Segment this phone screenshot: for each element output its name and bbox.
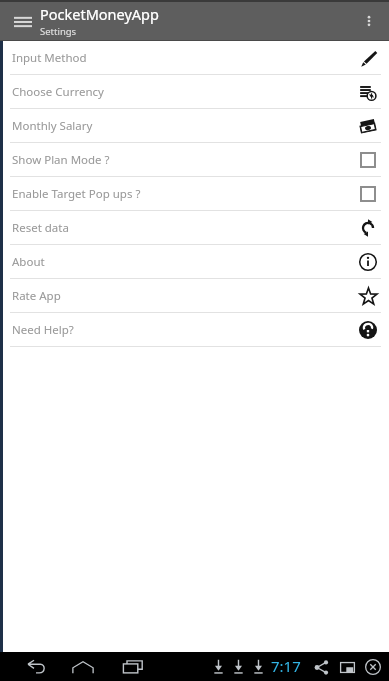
button[interactable]: Home: [58, 654, 108, 680]
button[interactable]: Back: [14, 654, 58, 680]
staticText: Enable Target Pop ups ?: [12, 186, 357, 202]
staticText: Choose Currency: [12, 84, 357, 100]
button[interactable]: Show Plan Mode ?: [0, 143, 389, 177]
staticText: Need Help?: [12, 322, 357, 338]
button[interactable]: Monthly Salary: [0, 109, 389, 143]
staticText: Input Method: [12, 50, 357, 66]
button[interactable]: More options: [353, 5, 385, 37]
button[interactable]: Recent apps: [108, 654, 158, 680]
button[interactable]: Choose Currency: [0, 75, 389, 109]
button[interactable]: Reset data: [0, 211, 389, 245]
staticText: About: [12, 254, 357, 270]
button[interactable]: Close: [361, 655, 385, 679]
staticText: Settings: [40, 25, 77, 38]
staticText: Monthly Salary: [12, 118, 357, 134]
button[interactable]: Need Help?: [0, 313, 389, 347]
staticText: PocketMoneyApp: [40, 4, 159, 24]
staticText: Reset data: [12, 220, 357, 236]
staticText: 7:17: [271, 656, 301, 676]
button[interactable]: Input Method: [0, 41, 389, 75]
button[interactable]: Open navigation menu: [8, 6, 38, 36]
button[interactable]: Multi window: [335, 655, 359, 679]
button[interactable]: Share: [309, 655, 333, 679]
button[interactable]: About: [0, 245, 389, 279]
staticText: Rate App: [12, 288, 357, 304]
button[interactable]: Rate App: [0, 279, 389, 313]
button[interactable]: Enable Target Pop ups ?: [0, 177, 389, 211]
staticText: Show Plan Mode ?: [12, 152, 357, 168]
